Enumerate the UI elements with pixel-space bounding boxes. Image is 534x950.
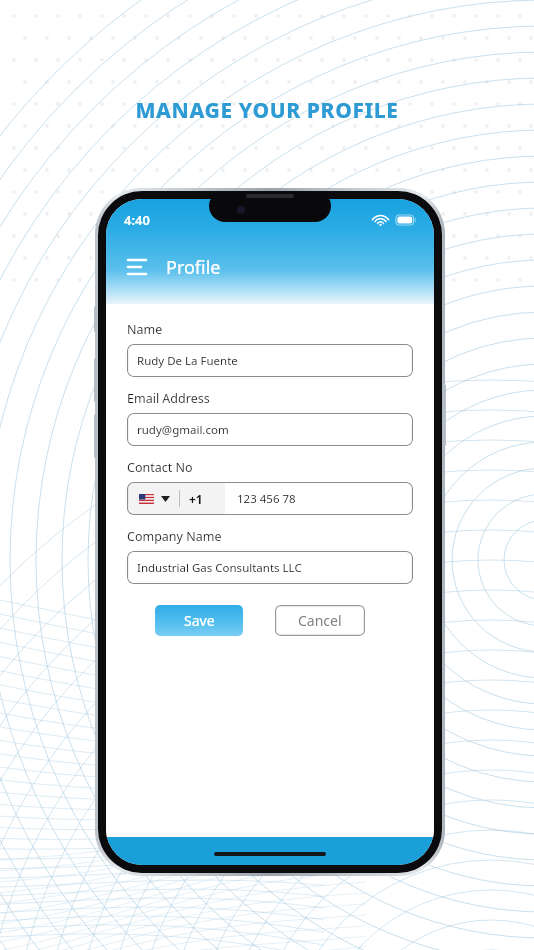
staticText: Cancel — [298, 611, 342, 630]
staticText: Name — [127, 321, 163, 338]
staticText: Profile — [166, 255, 221, 280]
staticText: 4:40 — [124, 211, 150, 229]
button[interactable]: Open navigation menu — [120, 250, 154, 284]
button[interactable]: Select country code — [127, 482, 413, 515]
staticText: rudy@gmail.com — [137, 422, 229, 438]
button[interactable]: Cancel — [275, 605, 365, 636]
button[interactable]: rudy@gmail.com — [127, 413, 413, 446]
staticText: +1 — [189, 491, 203, 507]
button[interactable]: Industrial Gas Consultants LLC — [127, 551, 413, 584]
staticText: 123 456 78 — [237, 491, 296, 507]
staticText: Rudy De La Fuente — [137, 353, 238, 369]
staticText: Company Name — [127, 528, 222, 545]
staticText: Save — [184, 611, 215, 630]
button[interactable]: Save — [155, 605, 243, 636]
staticText: Email Address — [127, 390, 210, 407]
staticText: MANAGE YOUR PROFILE — [0, 96, 534, 125]
staticText: Industrial Gas Consultants LLC — [137, 560, 302, 576]
button[interactable]: Rudy De La Fuente — [127, 344, 413, 377]
staticText: Contact No — [127, 459, 193, 476]
button[interactable]: Select country code — [127, 482, 225, 515]
